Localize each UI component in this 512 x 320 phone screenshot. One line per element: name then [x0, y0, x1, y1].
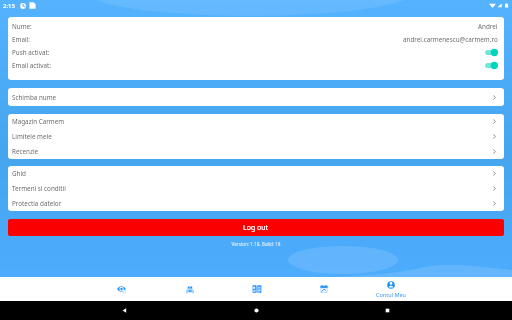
button[interactable]: Magazin Carmem [12, 114, 498, 129]
staticText: Protectia datelor [12, 199, 62, 208]
staticText: Limitele mele [12, 132, 52, 141]
staticText: 2:15 [3, 2, 15, 10]
button[interactable]: Back [118, 304, 131, 317]
staticText: Termeni si conditii [12, 184, 66, 193]
button[interactable]: Protectia datelor [12, 196, 498, 211]
staticText: Log out [243, 223, 269, 233]
staticText: Ghid [12, 169, 26, 178]
button[interactable]: Push activat: [485, 47, 498, 58]
staticText: Email: [12, 35, 30, 44]
staticText: Push activat: [12, 48, 50, 57]
button[interactable]: Recents [381, 304, 394, 317]
staticText: Schimba nume [12, 93, 57, 102]
button[interactable]: Ghid [12, 166, 498, 181]
staticText: Magazin Carmem [12, 117, 65, 126]
staticText: Recenzie [12, 147, 39, 156]
button[interactable]: Termeni si conditii [12, 181, 498, 196]
staticText: Nume: [12, 22, 32, 31]
button[interactable]: Masini [156, 277, 223, 301]
button[interactable]: Email activat: [485, 60, 498, 71]
button[interactable]: Calendar [290, 277, 357, 301]
button[interactable]: Comparatie [223, 277, 290, 301]
button[interactable]: Home [250, 304, 263, 317]
button[interactable]: Recenzie [12, 144, 498, 159]
staticText: andrei.carmenescu@carmem.ro [403, 35, 498, 44]
button[interactable]: Schimba nume [12, 88, 498, 106]
button[interactable]: Cauta [88, 277, 156, 301]
staticText: Contul Meu [376, 291, 406, 298]
button[interactable]: Limitele mele [12, 129, 498, 144]
button[interactable]: Contul Meu [357, 277, 424, 301]
button[interactable]: Log out [8, 219, 504, 236]
staticText: Version: 1.18, Build: 18 [8, 241, 504, 247]
staticText: Andrei [478, 22, 498, 31]
staticText: Email activat: [12, 61, 51, 70]
